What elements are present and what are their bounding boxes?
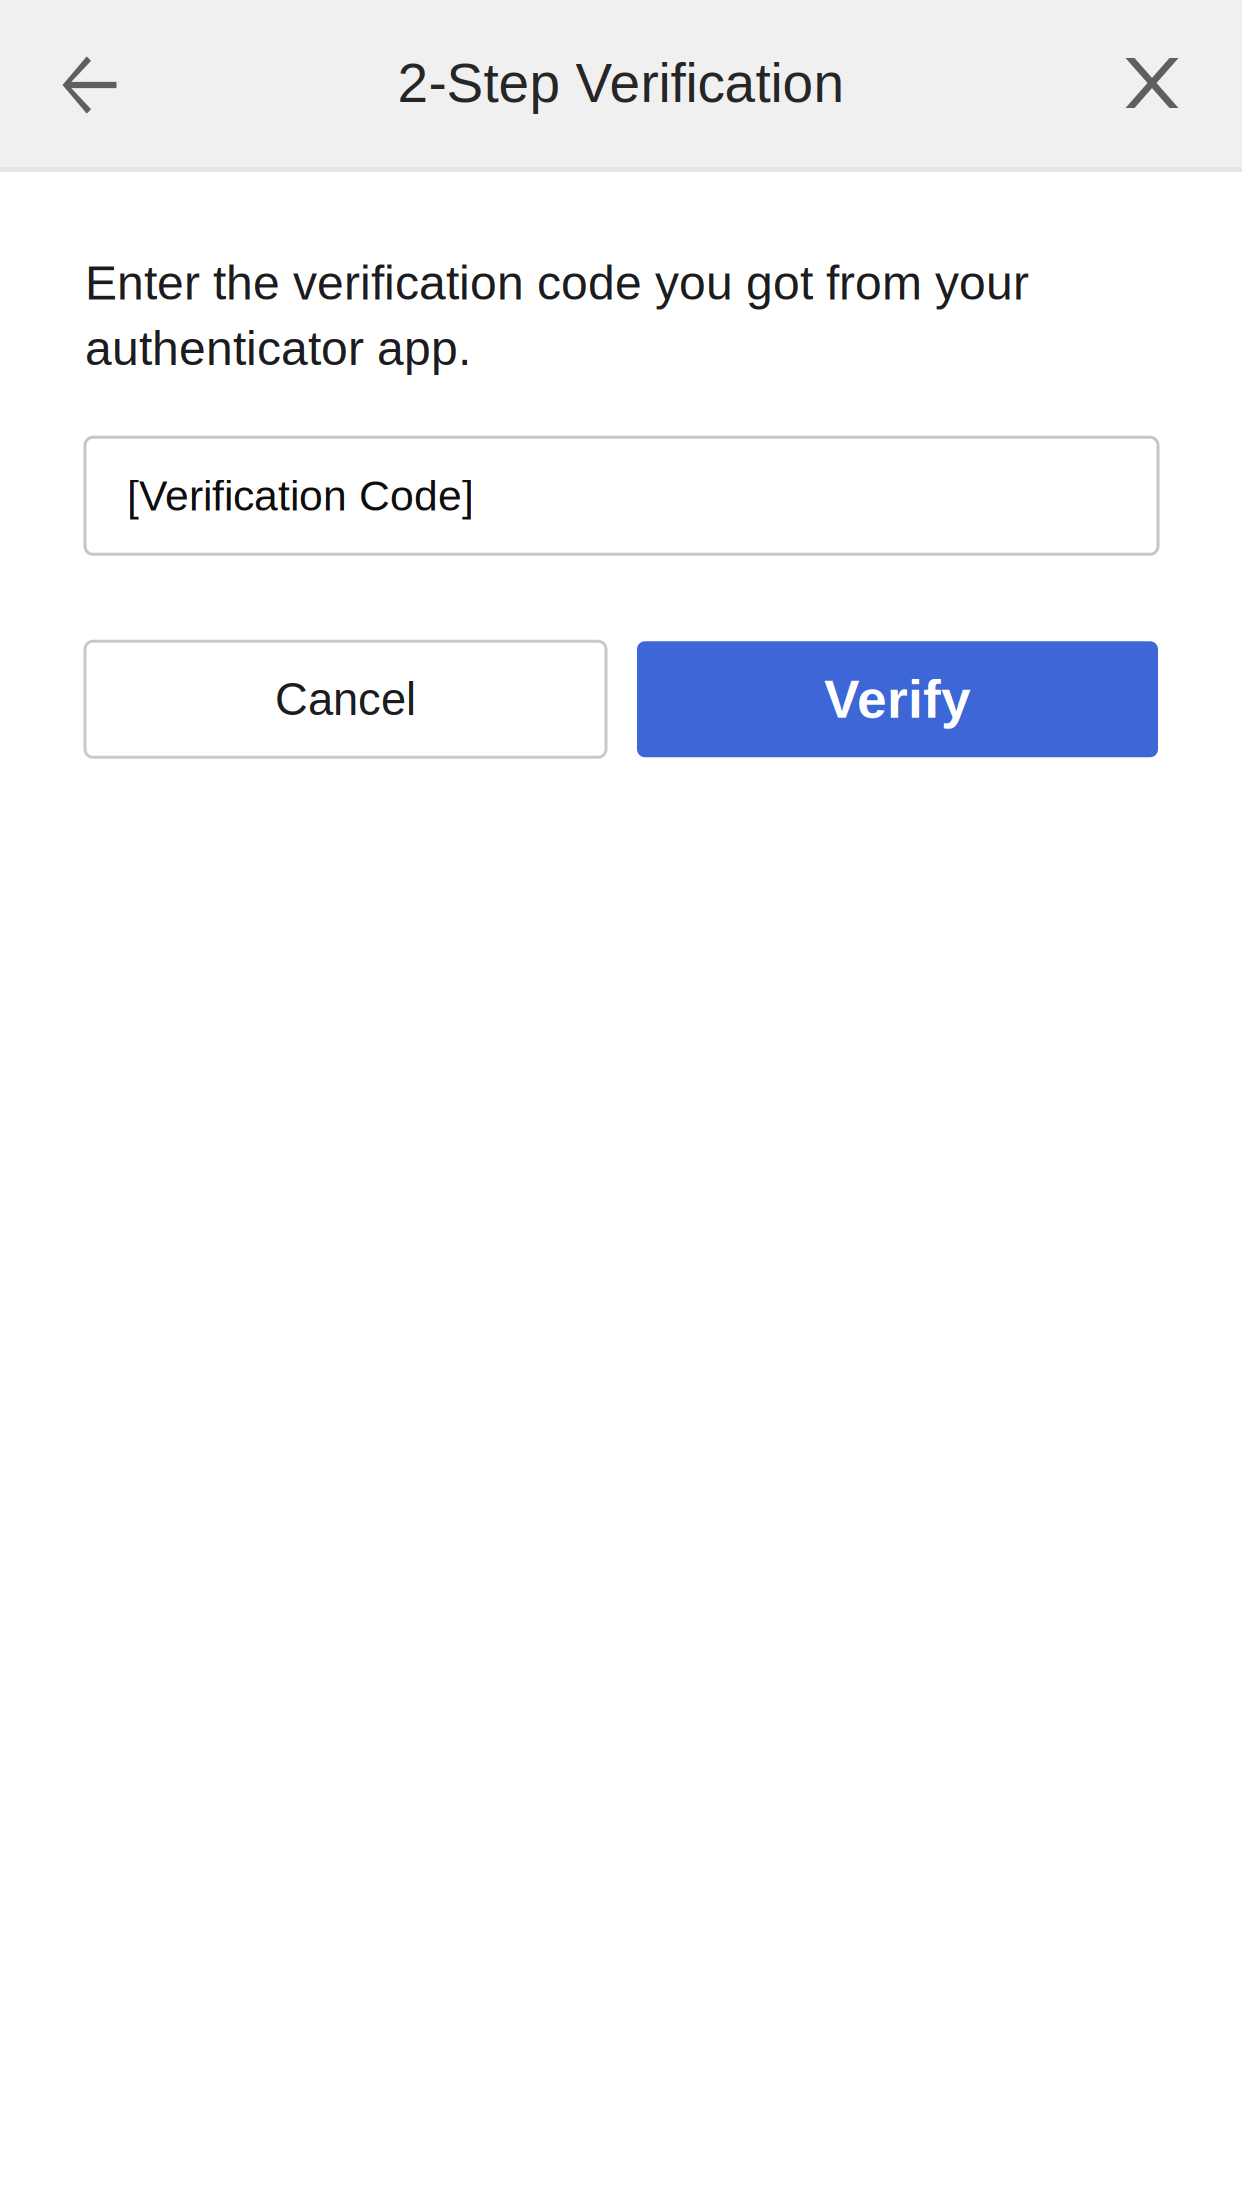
- button[interactable]: Cancel: [85, 641, 606, 757]
- staticText: 2-Step Verification: [397, 52, 844, 114]
- button[interactable]: [Verification Code]: [85, 437, 1158, 554]
- button[interactable]: Back: [28, 2, 152, 170]
- staticText: Cancel: [275, 674, 416, 724]
- staticText: Verify: [824, 669, 971, 729]
- button[interactable]: Verify: [637, 641, 1158, 757]
- staticText: [Verification Code]: [127, 472, 474, 520]
- button[interactable]: Close: [1090, 2, 1214, 170]
- staticText: Enter the verification code you got from…: [85, 256, 1029, 375]
